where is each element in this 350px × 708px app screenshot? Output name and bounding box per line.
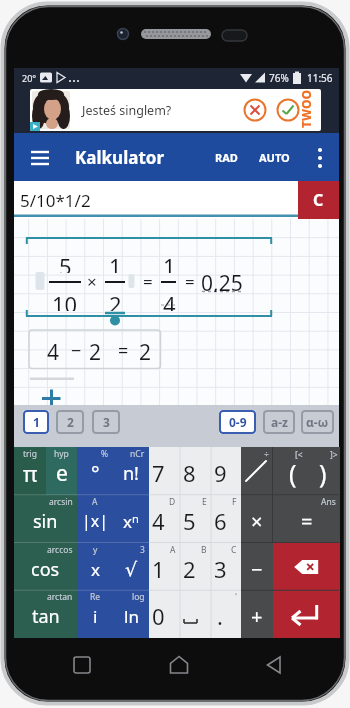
staticText: 6 xyxy=(214,506,227,536)
button[interactable]: E xyxy=(180,495,211,543)
staticText: 4 xyxy=(47,338,60,361)
staticText: F xyxy=(232,496,237,507)
staticText: xⁿ xyxy=(123,510,139,533)
button[interactable]: Re xyxy=(77,590,113,638)
button[interactable]: A xyxy=(77,495,113,543)
button[interactable]: arcsin xyxy=(14,495,77,543)
staticText: α-ω xyxy=(306,414,329,430)
button[interactable] xyxy=(273,590,340,638)
staticText: 11:56 xyxy=(307,71,333,85)
staticText: a-z xyxy=(271,414,288,430)
staticText: 4 xyxy=(152,506,165,536)
staticText: A xyxy=(170,544,176,555)
button[interactable]: RAD xyxy=(211,133,241,181)
staticText: i xyxy=(93,605,98,628)
staticText: 0-9 xyxy=(229,414,247,430)
button[interactable]: hyp xyxy=(46,447,77,495)
button[interactable]: 0-9 xyxy=(219,410,256,434)
button[interactable] xyxy=(273,543,340,591)
staticText: A xyxy=(92,496,98,507)
staticText: 1 xyxy=(33,414,40,430)
button[interactable]: + xyxy=(241,590,273,638)
button[interactable]: arccos xyxy=(14,543,77,591)
button[interactable]: A xyxy=(149,543,180,591)
staticText: log xyxy=(132,591,145,602)
button[interactable] xyxy=(180,590,211,638)
button[interactable] xyxy=(166,653,192,677)
staticText: % xyxy=(101,448,109,459)
button[interactable]: B xyxy=(180,543,211,591)
staticText: 2 xyxy=(109,289,122,311)
staticText: 3 xyxy=(140,544,145,555)
button[interactable]: ÷ xyxy=(241,447,273,495)
staticText: cos xyxy=(31,557,60,582)
button[interactable]: 7 xyxy=(149,447,180,495)
staticText: arcsin xyxy=(49,496,73,507)
button[interactable]: D xyxy=(149,495,180,543)
button[interactable]: trig xyxy=(14,447,46,495)
button[interactable]: ' xyxy=(211,590,241,638)
staticText: 1 xyxy=(109,251,122,273)
button[interactable]: 9 xyxy=(211,447,241,495)
staticText: = xyxy=(185,270,195,291)
staticText: ° xyxy=(91,460,100,487)
staticText: 4 xyxy=(163,289,176,311)
button[interactable]: nCr xyxy=(113,447,149,495)
staticText: Jesteś singlem? xyxy=(82,102,172,119)
button[interactable] xyxy=(24,141,58,173)
staticText: 2 xyxy=(139,338,152,361)
button[interactable]: Ans xyxy=(273,495,340,543)
staticText: arctan xyxy=(47,591,73,602)
button[interactable]: C xyxy=(298,181,339,219)
staticText: hyp xyxy=(54,448,69,459)
button[interactable]: F xyxy=(211,495,241,543)
staticText: 0,25 xyxy=(201,269,243,292)
staticText: RAD xyxy=(215,150,238,165)
button[interactable]: arctan xyxy=(14,590,77,638)
button[interactable]: y xyxy=(77,543,113,591)
button[interactable]: 0 xyxy=(149,590,180,638)
staticText: = xyxy=(143,270,153,291)
button[interactable]: × xyxy=(241,495,273,543)
staticText: 20° xyxy=(22,72,37,84)
staticText: 76% xyxy=(269,71,289,85)
button[interactable]: 2 xyxy=(56,410,84,434)
staticText: AUTO xyxy=(259,150,290,165)
button[interactable]: a-z xyxy=(263,410,295,434)
button[interactable]: 5/10*1/2 xyxy=(20,181,91,219)
button[interactable] xyxy=(308,141,334,173)
staticText: E xyxy=(202,496,207,507)
staticText: arccos xyxy=(47,544,73,555)
staticText: e xyxy=(56,459,68,488)
staticText: 0 xyxy=(152,601,165,631)
button[interactable]: 5 xyxy=(14,219,339,405)
staticText: D xyxy=(169,496,176,507)
button[interactable]: % xyxy=(77,447,113,495)
staticText: . xyxy=(217,601,223,631)
button[interactable]: 1 xyxy=(23,410,49,434)
button[interactable]: − xyxy=(241,543,273,591)
button[interactable] xyxy=(263,653,287,677)
staticText: n! xyxy=(123,461,139,486)
staticText: 3 xyxy=(103,414,110,430)
staticText: C xyxy=(231,544,237,555)
staticText: TWOO xyxy=(298,90,314,128)
button[interactable] xyxy=(273,447,340,495)
button[interactable]: Jesteś singlem? xyxy=(30,89,321,131)
button[interactable]: α-ω xyxy=(301,410,334,434)
staticText: × xyxy=(87,270,97,291)
button[interactable]: 3 xyxy=(92,410,120,434)
staticText: 5/10*1/2 xyxy=(20,189,91,212)
button[interactable]: 8 xyxy=(180,447,211,495)
button[interactable]: xⁿ xyxy=(113,495,149,543)
button[interactable]: 3 xyxy=(113,543,149,591)
staticText: 10 xyxy=(52,289,78,311)
button[interactable]: AUTO xyxy=(256,133,292,181)
staticText: − xyxy=(251,556,263,583)
button[interactable]: C xyxy=(211,543,241,591)
staticText: x xyxy=(91,558,100,581)
button[interactable] xyxy=(70,653,94,677)
staticText: 9 xyxy=(214,458,227,488)
staticText: 5 xyxy=(59,251,72,273)
button[interactable]: log xyxy=(113,590,149,638)
